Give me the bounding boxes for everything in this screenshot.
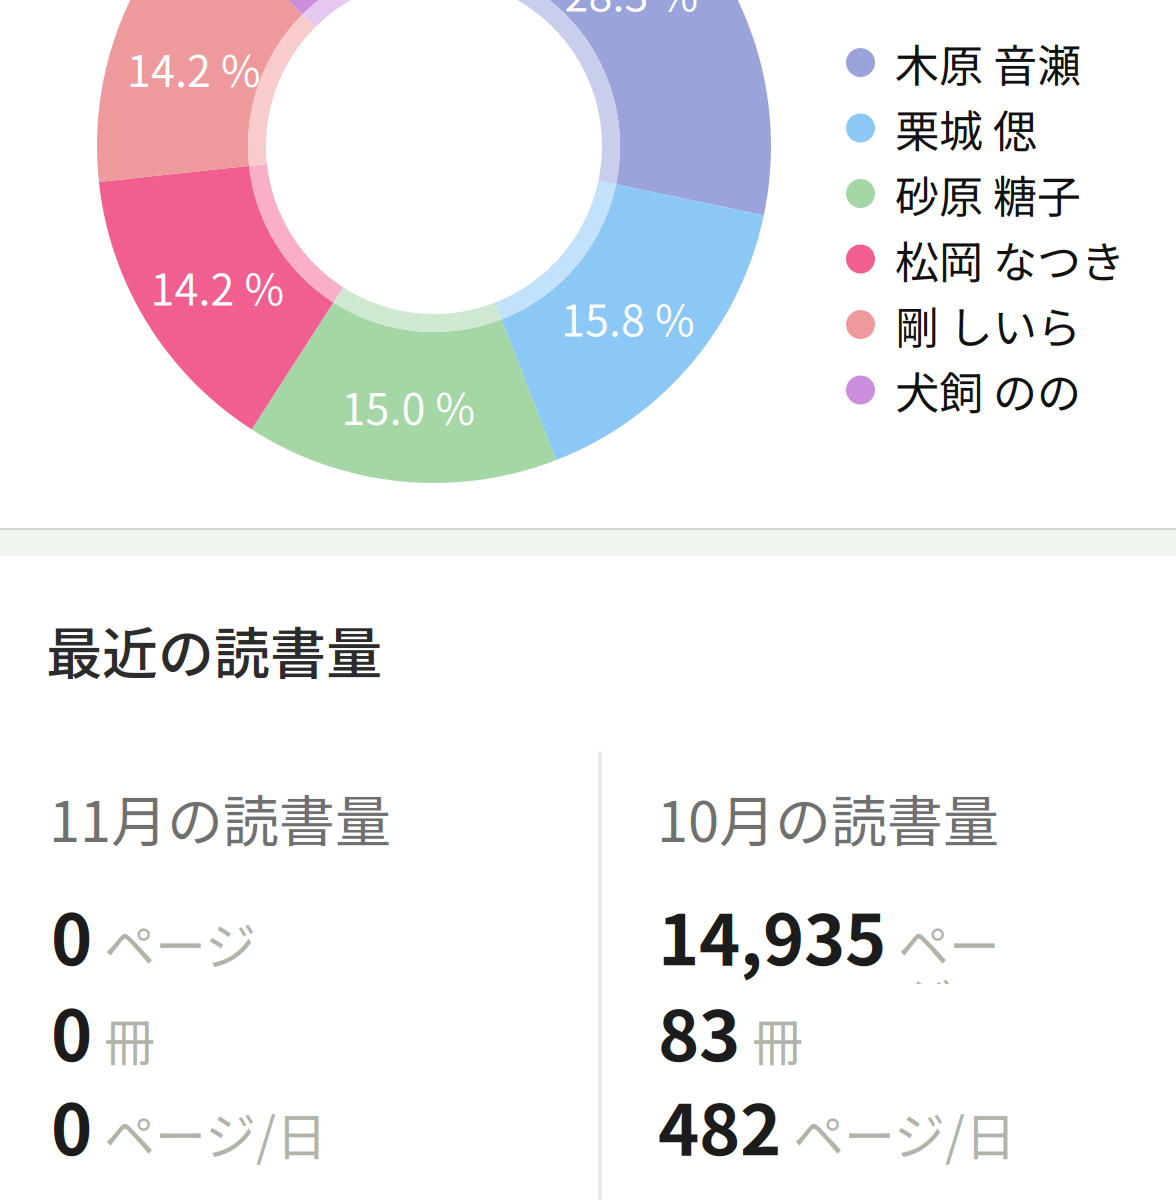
staticText: 28.3 % xyxy=(565,0,699,24)
staticText: 0 xyxy=(51,1074,92,1175)
staticText: ペー xyxy=(898,906,1000,980)
staticText: 482 xyxy=(658,1074,781,1175)
staticText: 14.2 % xyxy=(150,255,284,318)
staticText: 犬飼 のの xyxy=(895,358,1081,422)
staticText: 14.2 % xyxy=(127,37,261,99)
staticText: 10月の読書量 xyxy=(657,777,999,858)
staticText: ページ xyxy=(104,906,256,980)
staticText: ページ/日 xyxy=(793,1096,1016,1170)
staticText: 0 xyxy=(51,884,92,985)
staticText: 栗城 偲 xyxy=(895,96,1037,160)
staticText: 松岡 なつき xyxy=(895,227,1125,291)
staticText: 砂原 糖子 xyxy=(895,162,1081,225)
button[interactable]: 栗城 偲 xyxy=(846,99,1136,157)
staticText: 最近の読書量 xyxy=(46,609,382,690)
button[interactable]: 木原 音瀬 xyxy=(846,33,1136,91)
staticText: 11月の読書量 xyxy=(49,777,391,858)
staticText: 冊 xyxy=(104,1002,155,1076)
button[interactable]: 剛 しいら 14.2 % xyxy=(0,0,1176,1200)
staticText: ページ/日 xyxy=(104,1096,327,1170)
button[interactable]: 犬飼 のの 12.5 % xyxy=(0,0,1176,1200)
button[interactable]: 木原 音瀬 28.3 % xyxy=(0,0,1176,1200)
staticText: 15.0 % xyxy=(341,375,475,437)
staticText: ジ xyxy=(903,961,954,1035)
button[interactable]: 剛 しいら xyxy=(846,295,1136,353)
button[interactable]: 栗城 偲 15.8 % xyxy=(0,0,1176,1200)
staticText: 剛 しいら xyxy=(895,293,1081,356)
staticText: 木原 音瀬 xyxy=(895,31,1081,94)
staticText: 冊 xyxy=(752,1002,803,1076)
button[interactable]: 砂原 糖子 xyxy=(846,164,1136,222)
button[interactable]: 砂原 糖子 15.0 % xyxy=(0,0,1176,1200)
staticText: 0 xyxy=(51,980,92,1081)
staticText: 15.8 % xyxy=(561,286,695,349)
staticText: 83 xyxy=(658,980,740,1081)
staticText: 14,935 xyxy=(658,884,886,985)
button[interactable]: 犬飼 のの xyxy=(846,361,1136,419)
button[interactable]: 松岡 なつき xyxy=(846,230,1136,288)
button[interactable]: 松岡 なつき 14.2 % xyxy=(0,0,1176,1200)
